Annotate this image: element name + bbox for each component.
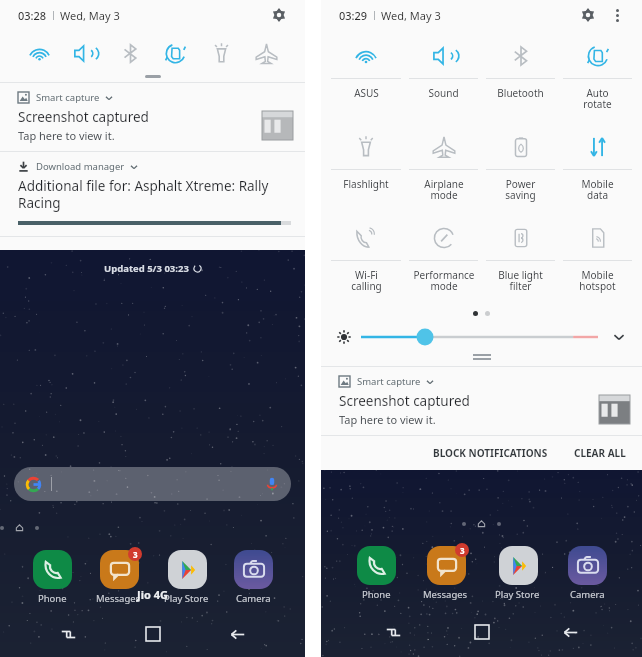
button[interactable]: Airplane mode	[249, 36, 283, 70]
button[interactable]: Settings	[574, 1, 602, 29]
staticText: Wed, May 3	[60, 8, 120, 23]
staticText: Messages	[96, 592, 141, 605]
button[interactable]: Phone	[29, 546, 75, 607]
button[interactable]: Home	[136, 617, 170, 651]
button[interactable]: Flashlight	[327, 125, 405, 216]
button[interactable]	[14, 467, 291, 501]
button[interactable]: BLOCK NOTIFICATIONS	[423, 440, 558, 466]
staticText: Blue light filter	[498, 268, 543, 293]
button[interactable]: Camera	[564, 542, 610, 603]
button[interactable]: Auto rotate	[559, 34, 636, 125]
button[interactable]: Smart capture	[321, 367, 642, 435]
staticText: Messages	[423, 588, 468, 601]
button[interactable]: Bluetooth	[113, 36, 147, 70]
button[interactable]: CLEAR ALL	[564, 440, 636, 466]
button[interactable]: Settings	[265, 1, 293, 29]
button[interactable]: Back	[220, 617, 254, 651]
staticText: ASUS	[354, 86, 379, 100]
button[interactable]: Phone	[353, 542, 399, 603]
staticText: Phone	[362, 588, 391, 601]
staticText: Mobile data	[581, 177, 614, 202]
button[interactable]: Airplane mode	[405, 125, 482, 216]
staticText: Download manager	[36, 160, 125, 173]
staticText: Airplane mode	[424, 177, 464, 202]
staticText: Phone	[38, 592, 67, 605]
staticText: 3	[133, 549, 138, 560]
button[interactable]: Expand	[606, 324, 632, 350]
staticText: Wi-Fi calling	[351, 268, 382, 293]
button[interactable]: Back	[553, 615, 587, 649]
button[interactable]: Recents	[51, 617, 85, 651]
button[interactable]: Blue light filter	[482, 216, 559, 307]
staticText: Wed, May 3	[381, 8, 441, 23]
staticText: Flashlight	[343, 177, 389, 191]
staticText: Performance mode	[413, 268, 475, 293]
button[interactable]: Smart capture	[0, 83, 305, 151]
button[interactable]: Recents	[376, 615, 410, 649]
staticText: Tap here to view it.	[339, 412, 436, 427]
button[interactable]: Play Store	[162, 546, 211, 607]
button[interactable]	[361, 326, 598, 348]
button[interactable]: Sound	[67, 36, 101, 70]
staticText: Jio 4G	[137, 587, 168, 602]
button[interactable]: Performance mode	[405, 216, 482, 307]
staticText: Camera	[570, 588, 605, 601]
button[interactable]: Mobile hotspot	[559, 216, 636, 307]
button[interactable]: Power saving	[482, 125, 559, 216]
button[interactable]: Wi-Fi calling	[327, 216, 405, 307]
staticText: Screenshot captured	[339, 392, 470, 410]
staticText: 3	[460, 545, 465, 556]
staticText: Tap here to view it.	[18, 128, 115, 143]
button[interactable]: Bluetooth	[482, 34, 559, 125]
button[interactable]: Wi-Fi	[22, 36, 56, 70]
staticText: CLEAR ALL	[574, 446, 626, 460]
button[interactable]: More options	[604, 2, 630, 28]
button[interactable]: Home	[465, 615, 499, 649]
button[interactable]: Play Store	[493, 542, 542, 603]
staticText: Screenshot captured	[18, 108, 149, 126]
staticText: Additional file for: Asphalt Xtreme: Ral…	[18, 177, 291, 212]
button[interactable]: 3	[421, 542, 470, 603]
button[interactable]: Camera	[230, 546, 276, 607]
button[interactable]: Auto rotate	[158, 36, 192, 70]
staticText: Smart capture	[36, 91, 100, 104]
staticText: 03:29	[339, 8, 368, 23]
button[interactable]: ASUS	[327, 34, 405, 125]
staticText: BLOCK NOTIFICATIONS	[433, 446, 548, 460]
staticText: Play Store	[164, 592, 209, 605]
staticText: Updated 5/3 03:23	[104, 262, 189, 275]
staticText: Sound	[428, 86, 459, 100]
staticText: Camera	[236, 592, 271, 605]
staticText: Power saving	[505, 177, 536, 202]
staticText: Bluetooth	[497, 86, 544, 100]
button[interactable]: Sound	[405, 34, 482, 125]
staticText: 03:28	[18, 8, 47, 23]
staticText: Smart capture	[357, 375, 421, 388]
staticText: Auto rotate	[583, 86, 612, 111]
staticText: Mobile hotspot	[579, 268, 616, 293]
button[interactable]: Brightness	[331, 324, 357, 350]
button[interactable]: Mobile data	[559, 125, 636, 216]
button[interactable]: 3	[94, 546, 143, 607]
staticText: Play Store	[495, 588, 540, 601]
button[interactable]: Download manager	[0, 152, 305, 236]
button[interactable]: Flashlight	[204, 36, 238, 70]
